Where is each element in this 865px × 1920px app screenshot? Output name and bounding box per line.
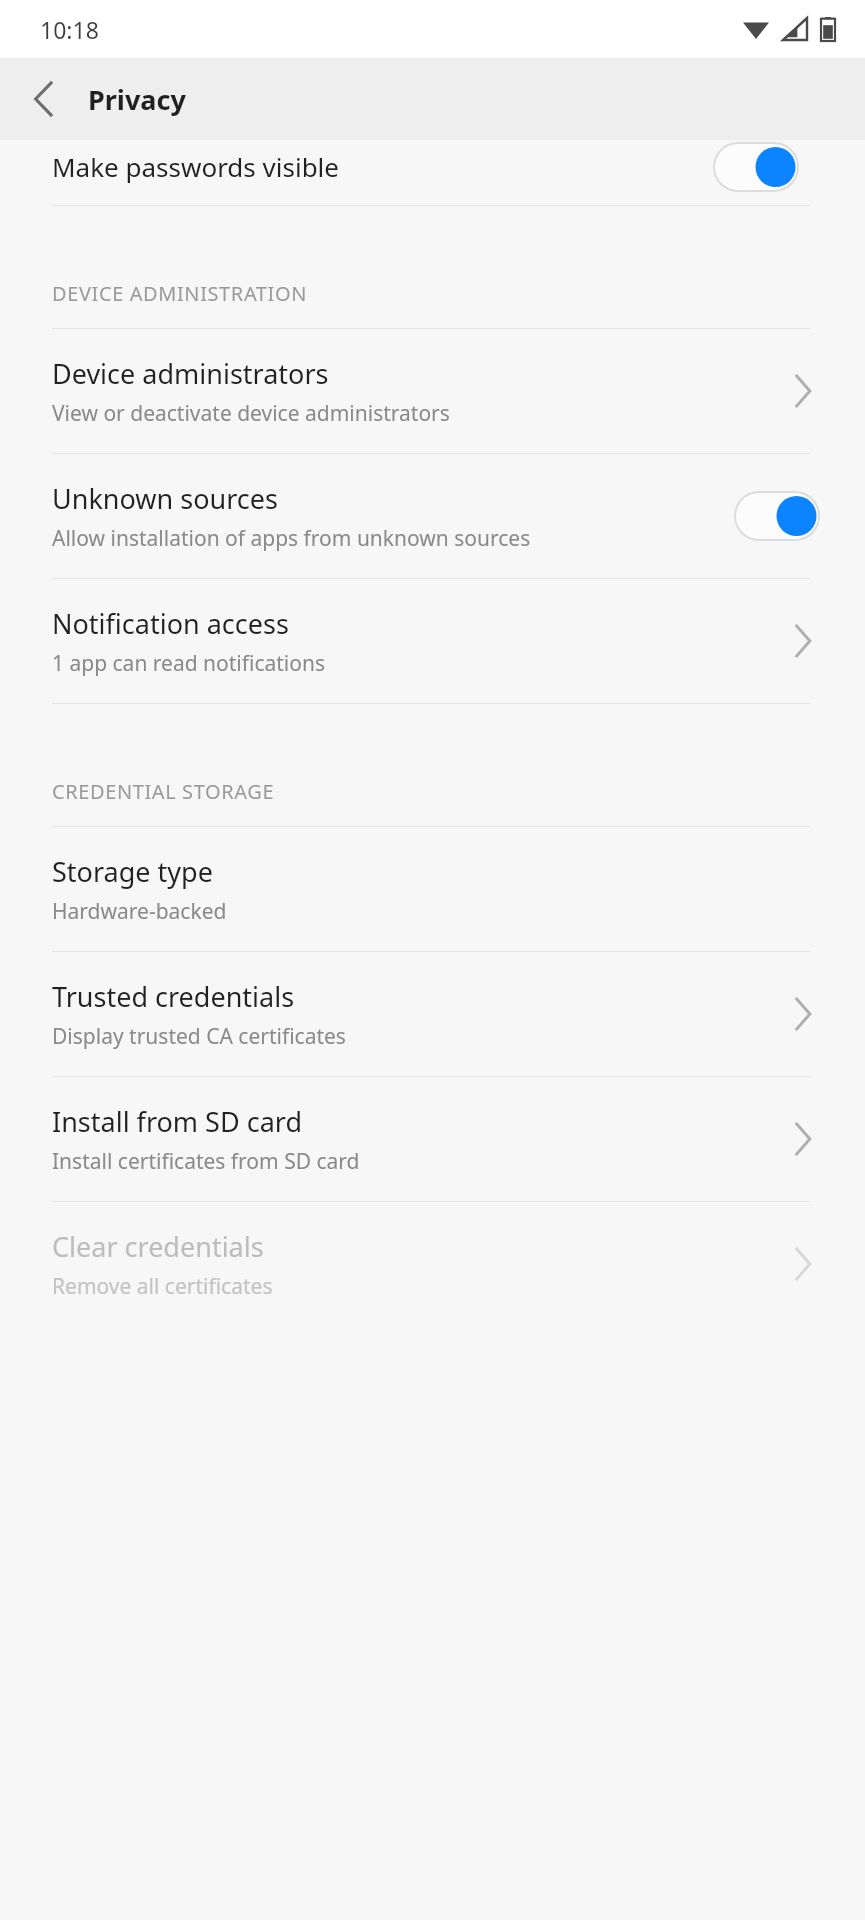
button[interactable]: Toggle <box>733 490 821 542</box>
button[interactable]: Back <box>16 71 72 127</box>
button[interactable]: Install from SD card <box>0 1077 865 1201</box>
button[interactable]: Trusted credentials <box>0 952 865 1076</box>
button[interactable]: Notification access <box>0 579 865 703</box>
staticText: Hardware-backed <box>52 897 227 926</box>
staticText: Make passwords visible <box>52 149 339 184</box>
staticText: Privacy <box>88 81 186 118</box>
staticText: DEVICE ADMINISTRATION <box>52 280 307 307</box>
staticText: View or deactivate device administrators <box>52 399 450 428</box>
staticText: 10:18 <box>40 14 99 45</box>
staticText: Notification access <box>52 605 289 642</box>
staticText: Allow installation of apps from unknown … <box>52 524 531 553</box>
staticText: Trusted credentials <box>52 978 295 1015</box>
button[interactable]: Device administrators <box>0 329 865 453</box>
staticText: Install certificates from SD card <box>52 1147 360 1176</box>
staticText: Device administrators <box>52 355 329 392</box>
staticText: Storage type <box>52 853 213 890</box>
staticText: Remove all certificates <box>52 1272 273 1301</box>
button[interactable]: Unknown sources <box>0 454 865 578</box>
staticText: CREDENTIAL STORAGE <box>52 778 275 805</box>
staticText: Unknown sources <box>52 480 278 517</box>
button[interactable]: Clear credentials <box>0 1202 865 1326</box>
staticText: Clear credentials <box>52 1228 264 1265</box>
staticText: 1 app can read notifications <box>52 649 326 678</box>
button[interactable]: Toggle <box>712 141 800 193</box>
button[interactable]: Storage type <box>0 827 865 951</box>
staticText: Install from SD card <box>52 1103 302 1140</box>
staticText: Display trusted CA certificates <box>52 1022 346 1051</box>
button[interactable]: Make passwords visible <box>0 140 865 205</box>
